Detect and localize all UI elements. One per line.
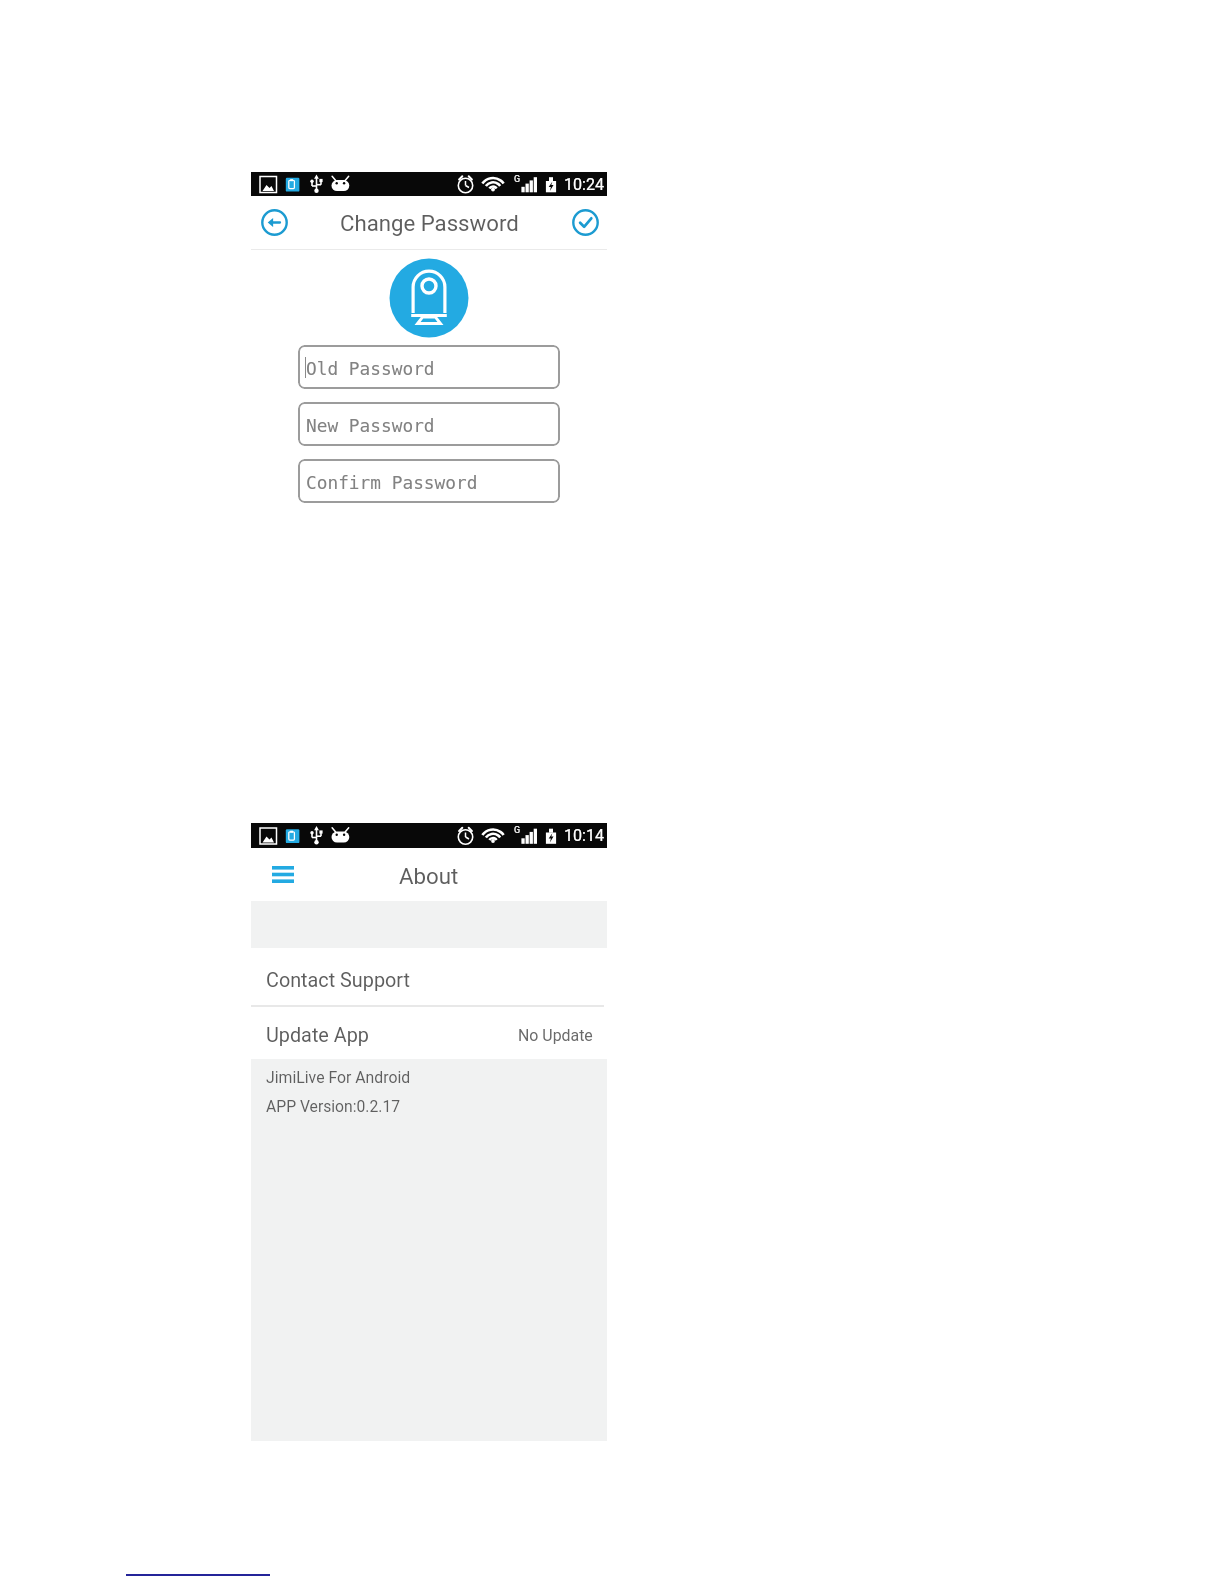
- button[interactable]: Confirm Password: [298, 459, 560, 503]
- staticText: No Update: [518, 1026, 593, 1045]
- button[interactable]: New Password: [298, 402, 560, 446]
- staticText: 10:14: [564, 826, 605, 845]
- button[interactable]: Confirm: [568, 205, 603, 240]
- button[interactable]: Back: [257, 205, 292, 240]
- staticText: Confirm Password: [306, 472, 478, 493]
- staticText: JimiLive For Android: [266, 1068, 411, 1087]
- staticText: Old Password: [306, 358, 435, 379]
- button[interactable]: Update App: [251, 1007, 607, 1059]
- staticText: Contact Support: [266, 969, 410, 992]
- staticText: About: [399, 863, 459, 889]
- button[interactable]: Contact Support: [251, 948, 607, 1005]
- button[interactable]: Old Password: [298, 345, 560, 389]
- staticText: Update App: [266, 1024, 369, 1047]
- staticText: Change Password: [340, 210, 519, 236]
- staticText: G: [514, 174, 521, 185]
- staticText: APP Version:0.2.17: [266, 1097, 401, 1115]
- staticText: New Password: [306, 415, 435, 436]
- staticText: G: [514, 825, 521, 836]
- button[interactable]: Menu: [263, 854, 303, 894]
- staticText: 10:24: [564, 175, 605, 194]
